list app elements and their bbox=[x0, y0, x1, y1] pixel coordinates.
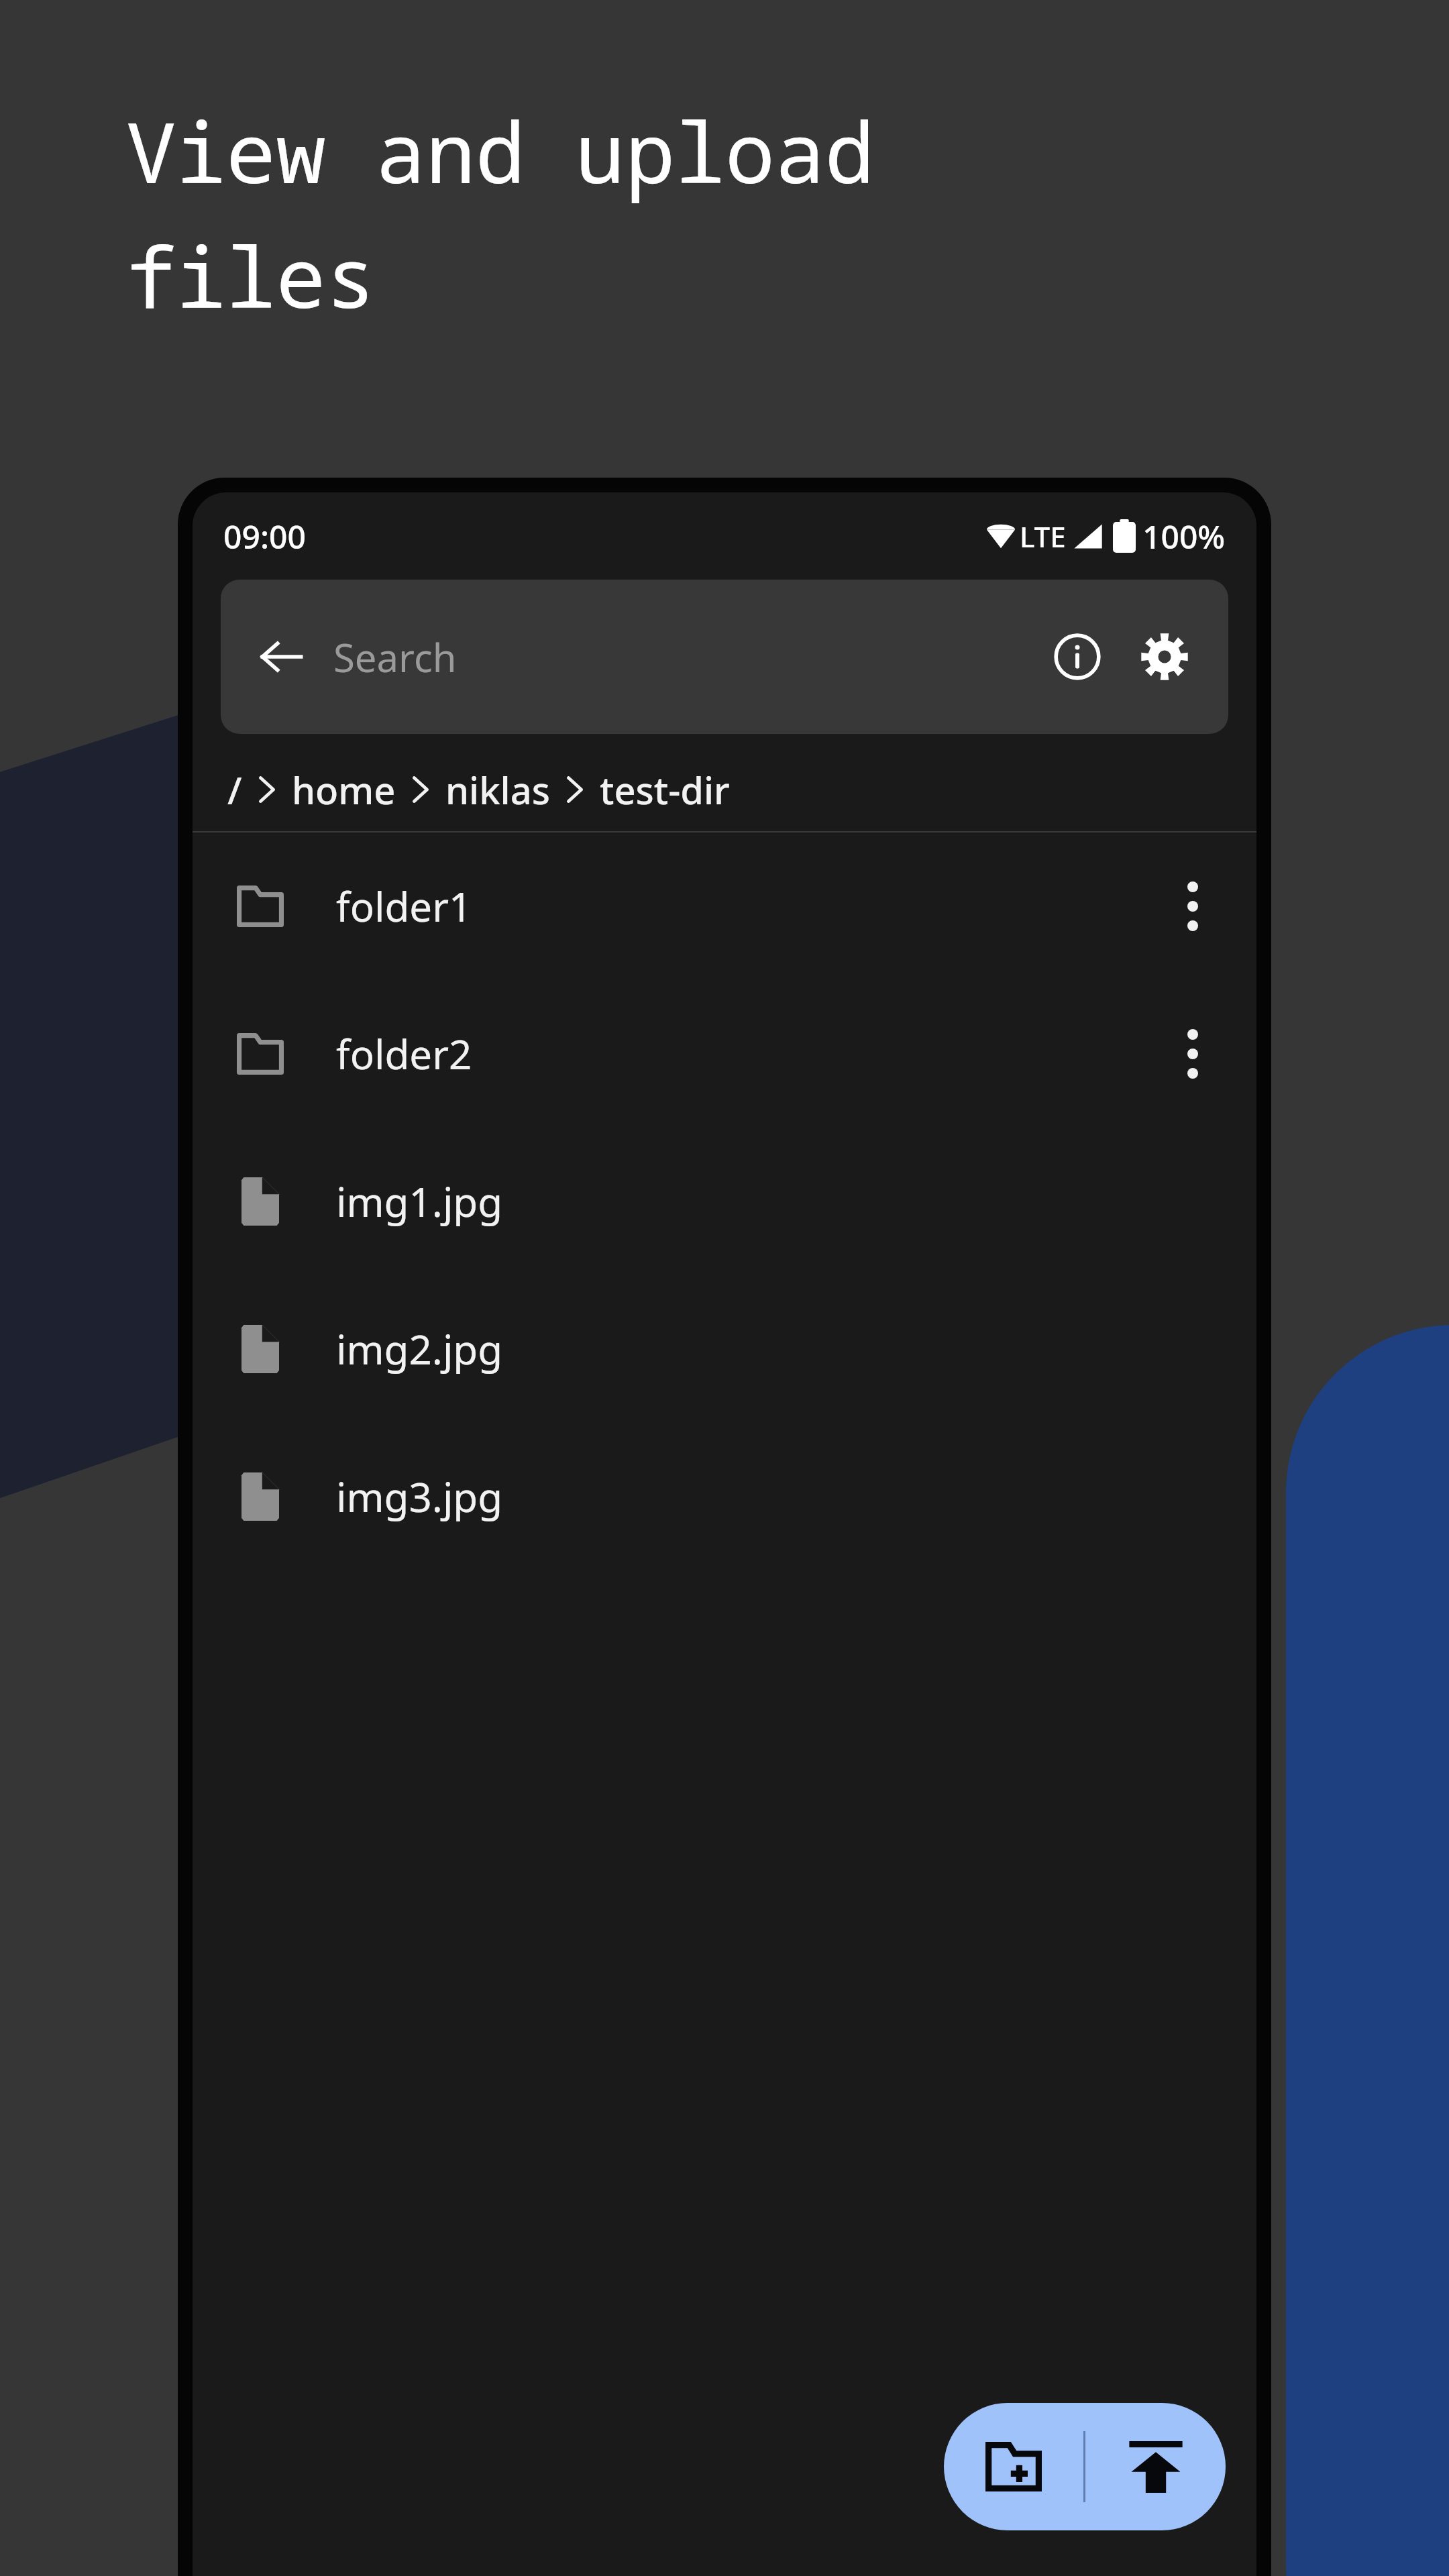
button[interactable]: Back bbox=[248, 623, 315, 690]
button[interactable]: niklas bbox=[441, 760, 554, 819]
staticText: Search bbox=[333, 631, 457, 684]
button[interactable]: folder2 bbox=[193, 980, 1256, 1128]
button[interactable]: Info bbox=[1040, 620, 1114, 694]
staticText: 09:00 bbox=[223, 515, 306, 558]
staticText: / bbox=[227, 764, 242, 815]
button[interactable]: Upload file bbox=[1085, 2403, 1226, 2530]
button[interactable]: Back bbox=[221, 580, 1228, 734]
staticText: img1.jpg bbox=[336, 1174, 503, 1229]
button[interactable]: img3.jpg bbox=[193, 1423, 1256, 1570]
staticText: LTE bbox=[1020, 517, 1066, 555]
staticText: 100% bbox=[1142, 515, 1226, 558]
staticText: folder2 bbox=[336, 1026, 472, 1081]
staticText: View and upload files bbox=[126, 94, 875, 332]
button[interactable]: / bbox=[223, 760, 246, 819]
staticText: img2.jpg bbox=[336, 1322, 503, 1377]
staticText: img3.jpg bbox=[336, 1469, 503, 1524]
button[interactable]: Settings bbox=[1128, 620, 1201, 694]
button[interactable]: folder1 bbox=[193, 833, 1256, 980]
staticText: test-dir bbox=[600, 764, 730, 815]
button[interactable]: img1.jpg bbox=[193, 1128, 1256, 1275]
button[interactable]: home bbox=[288, 760, 400, 819]
button[interactable]: More options bbox=[1156, 1017, 1230, 1091]
staticText: folder1 bbox=[336, 879, 472, 934]
button[interactable]: Create folder bbox=[944, 2403, 1083, 2530]
button[interactable]: test-dir bbox=[596, 760, 734, 819]
button[interactable]: img2.jpg bbox=[193, 1275, 1256, 1423]
staticText: niklas bbox=[445, 764, 550, 815]
staticText: home bbox=[292, 764, 396, 815]
button[interactable]: More options bbox=[1156, 869, 1230, 943]
